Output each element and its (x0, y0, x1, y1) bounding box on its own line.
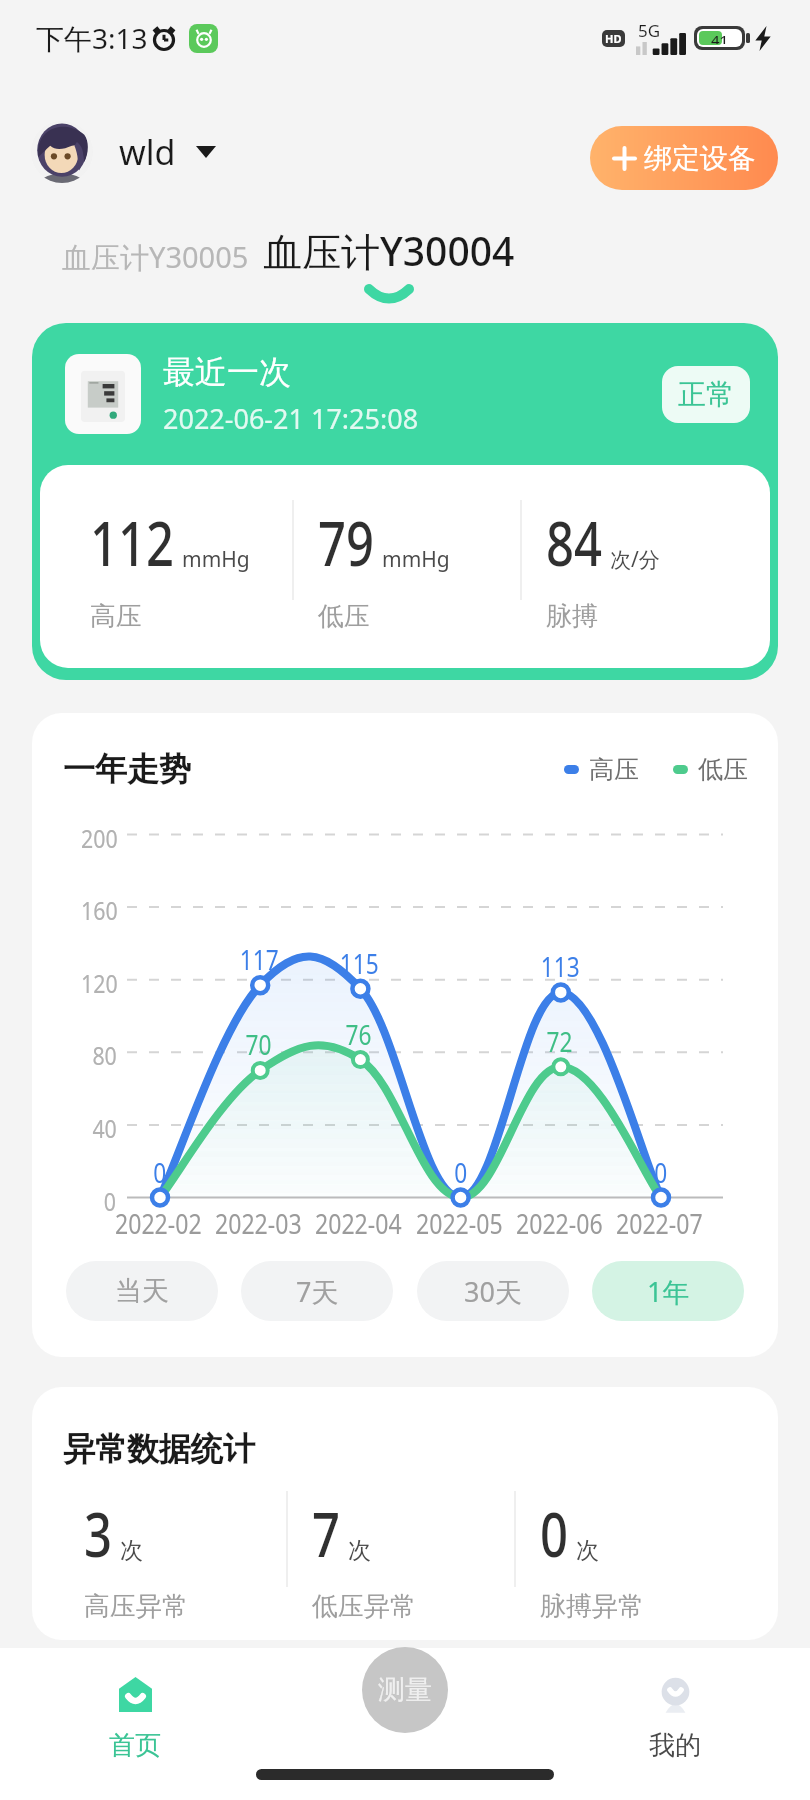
staticText: 次/分 (610, 545, 660, 574)
staticText: 120 (81, 965, 118, 1000)
staticText: 2022-07 (616, 1205, 703, 1242)
staticText: mmHg (182, 545, 250, 574)
staticText: 0 (104, 1183, 116, 1218)
staticText: 绑定设备 (644, 141, 756, 176)
staticText: 异常数据统计 (63, 1429, 255, 1469)
staticText: 2022-02 (115, 1205, 202, 1242)
staticText: 脉搏异常 (540, 1590, 644, 1623)
staticText: 7 (312, 1491, 340, 1575)
staticText: 76 (345, 1016, 371, 1053)
staticText: 低压异常 (312, 1590, 416, 1623)
staticText: 41 (711, 30, 729, 44)
staticText: 次 (348, 1536, 371, 1565)
staticText: 160 (81, 892, 118, 927)
button[interactable]: 30天 (417, 1261, 569, 1321)
staticText: 2022-03 (215, 1205, 302, 1242)
staticText: 2022-04 (315, 1205, 402, 1242)
staticText: 高压 (90, 600, 142, 633)
staticText: 一年走势 (63, 749, 191, 789)
staticText: 0 (454, 1154, 468, 1191)
staticText: 70 (245, 1026, 271, 1063)
staticText: 血压计Y30005 (62, 237, 249, 277)
staticText: 下午3:13 (36, 19, 148, 57)
staticText: 115 (340, 945, 379, 982)
staticText: 次 (120, 1536, 143, 1565)
button[interactable]: 血压计Y30005 (49, 224, 262, 290)
button[interactable]: 血压计Y30004 (250, 218, 528, 305)
button[interactable]: 测量 (362, 1647, 448, 1733)
button[interactable]: 当天 (66, 1261, 218, 1321)
button[interactable]: 正常 (662, 366, 750, 423)
staticText: 30天 (464, 1273, 522, 1310)
button[interactable]: 我的 (608, 1648, 742, 1766)
staticText: 次 (576, 1536, 599, 1565)
staticText: 200 (81, 820, 118, 855)
staticText: 1年 (647, 1273, 690, 1310)
button[interactable]: 7天 (241, 1261, 393, 1321)
staticText: 72 (546, 1023, 572, 1060)
staticText: 40 (92, 1110, 117, 1145)
staticText: 低压 (318, 600, 370, 633)
staticText: 高压 (589, 754, 639, 785)
staticText: 0 (153, 1154, 167, 1191)
button[interactable]: 绑定设备 (590, 126, 778, 190)
staticText: 80 (92, 1037, 117, 1072)
button[interactable]: 1年 (592, 1261, 744, 1321)
staticText: 0 (654, 1154, 668, 1191)
staticText: 最近一次 (163, 352, 291, 392)
staticText: 3 (84, 1491, 112, 1575)
staticText: 112 (90, 500, 174, 584)
staticText: HD (605, 31, 622, 46)
staticText: 脉搏 (546, 600, 598, 633)
staticText: 5G (638, 19, 661, 42)
staticText: 高压异常 (84, 1590, 188, 1623)
staticText: 84 (546, 500, 602, 584)
staticText: 我的 (649, 1729, 701, 1762)
staticText: 血压计Y30004 (263, 224, 515, 277)
button[interactable]: wld (27, 117, 220, 187)
staticText: 当天 (115, 1274, 169, 1308)
staticText: wld (119, 129, 176, 175)
staticText: 正常 (678, 377, 734, 412)
staticText: 低压 (698, 754, 748, 785)
staticText: 113 (541, 948, 580, 985)
staticText: 2022-05 (416, 1205, 503, 1242)
staticText: 117 (240, 941, 279, 978)
staticText: 0 (540, 1491, 568, 1575)
staticText: 测量 (378, 1673, 432, 1707)
staticText: 7天 (296, 1273, 339, 1310)
staticText: 2022-06 (516, 1205, 603, 1242)
staticText: 首页 (109, 1729, 161, 1762)
button[interactable]: 首页 (68, 1648, 202, 1766)
staticText: 79 (318, 500, 374, 584)
staticText: 2022-06-21 17:25:08 (163, 400, 419, 437)
staticText: mmHg (382, 545, 450, 574)
